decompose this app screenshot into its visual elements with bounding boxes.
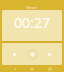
button[interactable]: Back xyxy=(12,66,18,72)
button[interactable]: Timer xyxy=(0,4,64,10)
button[interactable]: Reset xyxy=(10,50,19,59)
staticText: 00:27 xyxy=(2,13,62,32)
button[interactable]: Add a minute xyxy=(45,50,54,59)
button[interactable]: Home xyxy=(29,66,35,72)
button[interactable]: Start timer xyxy=(27,49,38,60)
button[interactable]: Recent apps xyxy=(47,66,53,72)
staticText: Timer xyxy=(26,5,38,10)
